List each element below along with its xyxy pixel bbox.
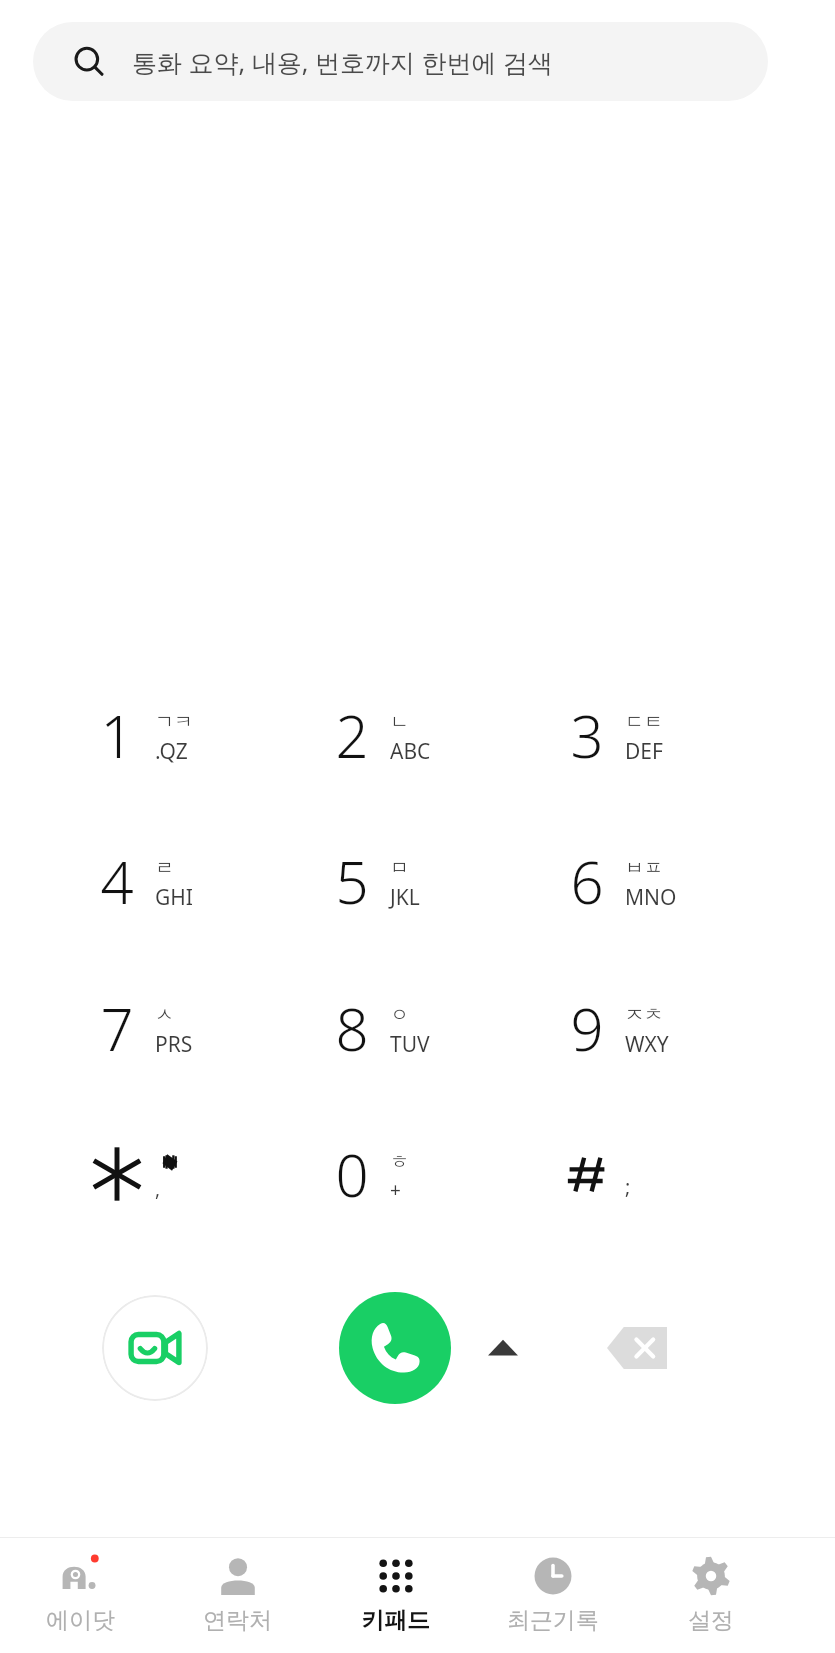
- button[interactable]: 최근기록: [475, 1545, 631, 1653]
- staticText: 4: [100, 842, 134, 921]
- staticText: 6: [570, 842, 604, 921]
- staticText: 1: [100, 696, 134, 775]
- staticText: WXY: [625, 1030, 669, 1059]
- staticText: 3: [570, 696, 604, 775]
- staticText: 5: [335, 842, 369, 921]
- button[interactable]: 3: [520, 673, 740, 797]
- staticText: ㅇ: [390, 1003, 409, 1027]
- staticText: 8: [335, 989, 369, 1068]
- staticText: ㄷㅌ: [625, 710, 663, 734]
- button[interactable]: 4: [50, 819, 270, 943]
- staticText: ;: [625, 1173, 631, 1200]
- staticText: ㅎ: [390, 1150, 409, 1174]
- staticText: 설정: [688, 1606, 734, 1635]
- staticText: ㄱㅋ: [155, 710, 193, 734]
- staticText: JKL: [390, 883, 420, 912]
- button[interactable]: 0: [285, 1112, 505, 1236]
- staticText: 0: [335, 1135, 369, 1214]
- staticText: .QZ: [155, 737, 188, 766]
- staticText: +: [390, 1177, 401, 1203]
- button[interactable]: ,: [50, 1112, 270, 1236]
- staticText: 연락처: [203, 1606, 272, 1635]
- button[interactable]: 키패드 숨기기: [471, 1316, 535, 1380]
- button[interactable]: 1: [50, 673, 270, 797]
- button[interactable]: 키패드: [317, 1545, 473, 1653]
- button[interactable]: 9: [520, 966, 740, 1090]
- button[interactable]: 통화 요약, 내용, 번호까지 한번에 검색: [33, 22, 768, 101]
- staticText: ㅈㅊ: [625, 1003, 663, 1027]
- staticText: 9: [570, 989, 604, 1068]
- staticText: 에이닷: [46, 1606, 115, 1635]
- button[interactable]: 6: [520, 819, 740, 943]
- button[interactable]: 8: [285, 966, 505, 1090]
- button[interactable]: ;: [520, 1112, 740, 1236]
- button[interactable]: 설정: [633, 1545, 789, 1653]
- staticText: ㅁ: [390, 856, 409, 880]
- staticText: 통화 요약, 내용, 번호까지 한번에 검색: [132, 45, 553, 79]
- staticText: ABC: [390, 737, 431, 766]
- staticText: 7: [100, 989, 134, 1068]
- button[interactable]: 통화: [339, 1292, 451, 1404]
- staticText: ㄹ: [155, 856, 174, 880]
- staticText: ㅂㅍ: [625, 856, 663, 880]
- staticText: ㄴ: [390, 710, 409, 734]
- button[interactable]: 에이닷: [2, 1545, 158, 1653]
- staticText: 최근기록: [507, 1606, 599, 1635]
- button[interactable]: 연락처: [159, 1545, 315, 1653]
- staticText: TUV: [390, 1030, 430, 1059]
- staticText: MNO: [625, 883, 677, 912]
- button[interactable]: 지우기: [597, 1312, 677, 1384]
- staticText: PRS: [155, 1030, 193, 1059]
- button[interactable]: 2: [285, 673, 505, 797]
- staticText: ,: [155, 1176, 161, 1202]
- button[interactable]: 7: [50, 966, 270, 1090]
- staticText: DEF: [625, 737, 663, 766]
- staticText: GHI: [155, 883, 193, 912]
- staticText: 키패드: [361, 1606, 430, 1635]
- staticText: 2: [335, 696, 369, 775]
- staticText: ㅅ: [155, 1003, 174, 1027]
- button[interactable]: 영상 통화: [102, 1295, 208, 1401]
- button[interactable]: 5: [285, 819, 505, 943]
